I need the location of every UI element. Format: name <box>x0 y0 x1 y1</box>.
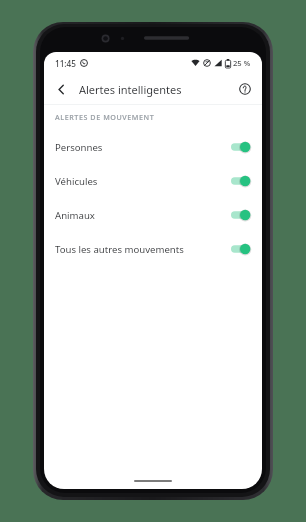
staticText: Animaux <box>55 209 225 222</box>
button[interactable]: Toggle on <box>231 174 251 188</box>
button[interactable]: Back <box>50 78 72 100</box>
staticText: ALERTES DE MOUVEMENT <box>55 112 155 122</box>
button[interactable]: Toggle on <box>231 242 251 256</box>
button[interactable]: Help <box>234 78 256 100</box>
staticText: 11:45 <box>55 58 76 69</box>
staticText: Alertes intelligentes <box>79 82 182 97</box>
button[interactable]: Véhicules <box>44 164 262 198</box>
button[interactable]: Tous les autres mouvements <box>44 232 262 266</box>
button[interactable]: Toggle on <box>231 140 251 154</box>
button[interactable]: Toggle on <box>231 208 251 222</box>
button[interactable]: Personnes <box>44 130 262 164</box>
button[interactable]: Animaux <box>44 198 262 232</box>
staticText: Tous les autres mouvements <box>55 243 225 256</box>
staticText: Personnes <box>55 141 225 154</box>
staticText: Véhicules <box>55 175 225 188</box>
staticText: 25 % <box>233 58 251 68</box>
